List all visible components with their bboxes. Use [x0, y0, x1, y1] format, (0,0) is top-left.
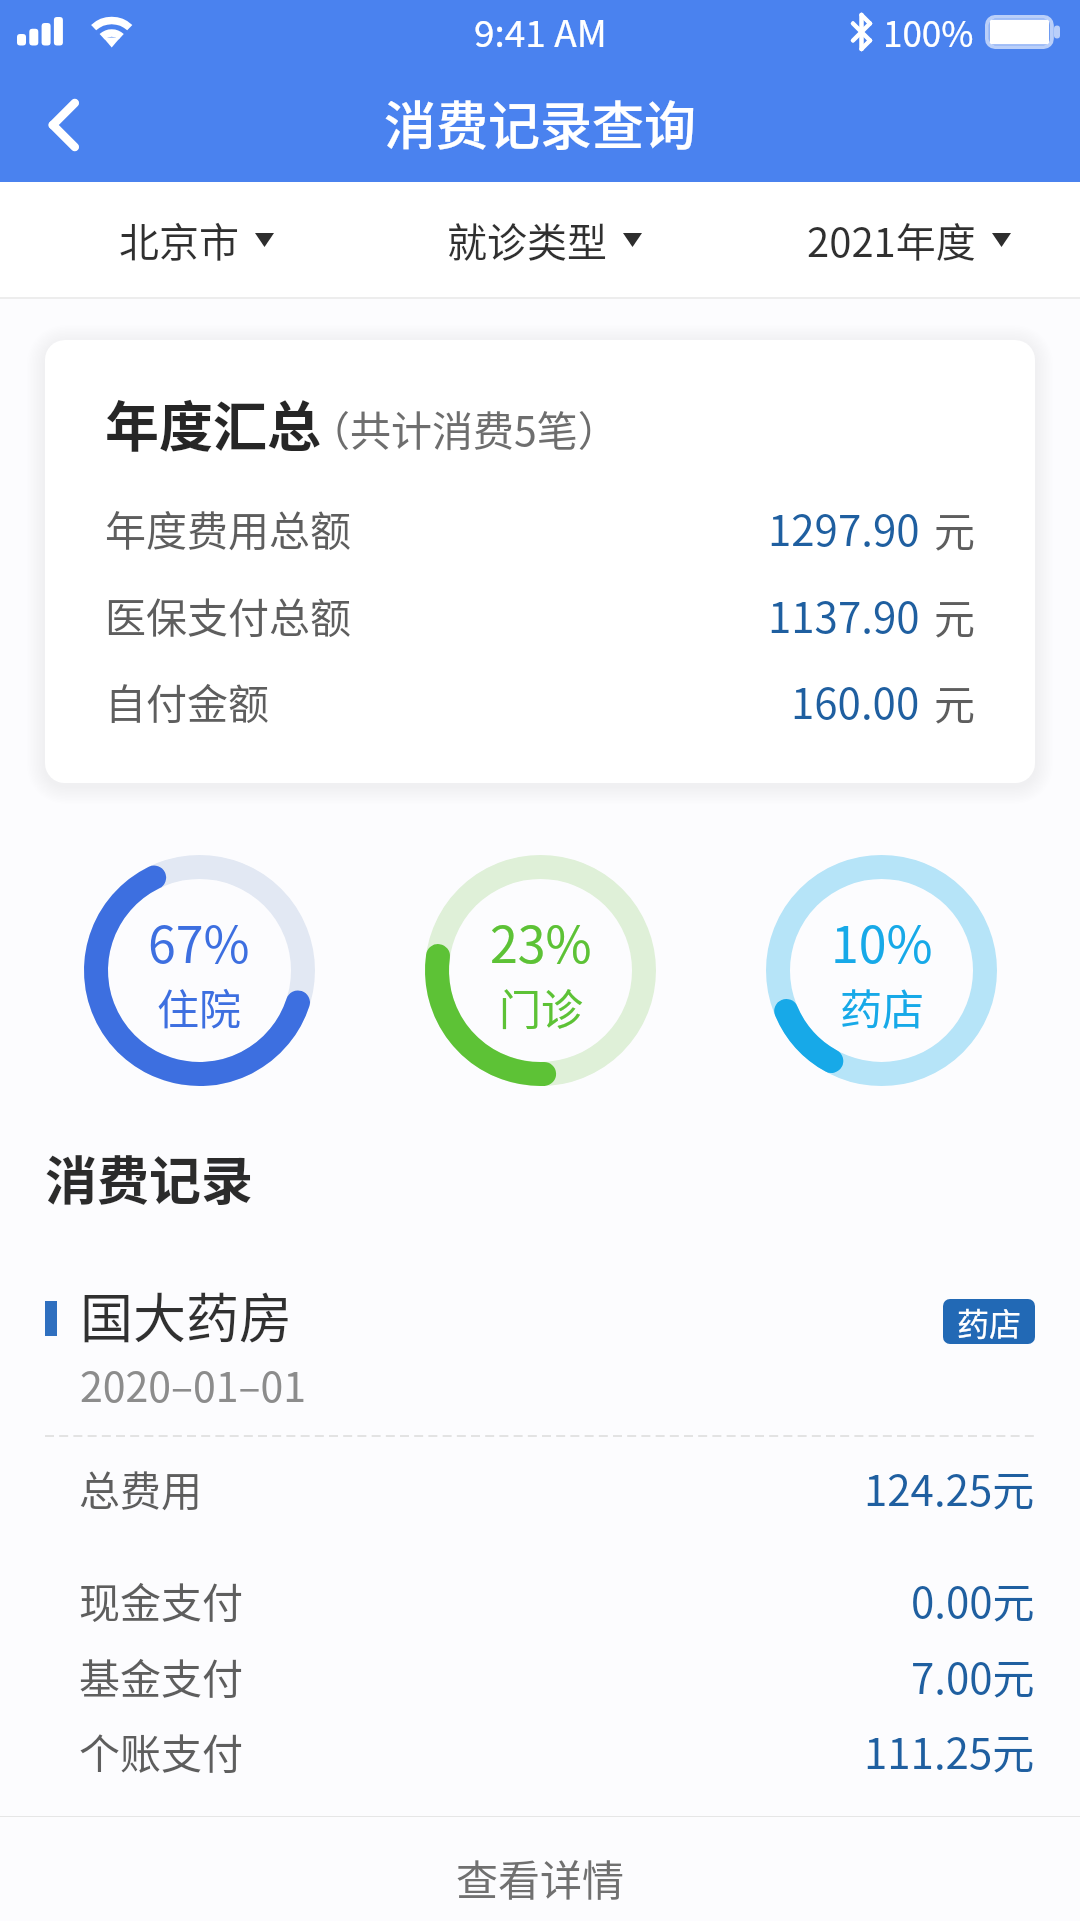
button[interactable]: 就诊类型 [369, 182, 720, 297]
staticText: 查看详情 [456, 1847, 625, 1908]
staticText: 160.00 [791, 670, 920, 731]
staticText: 北京市 [119, 211, 239, 269]
staticText: 自付金额 [105, 671, 269, 730]
staticText: 基金支付 [79, 1646, 243, 1705]
staticText: 消费记录 [45, 1140, 254, 1215]
staticText: 现金支付 [79, 1570, 243, 1629]
staticText: 总费用 [79, 1458, 202, 1517]
staticText: 100% [883, 6, 974, 57]
staticText: 7.00元 [911, 1645, 1035, 1706]
staticText: 年度费用总额 [105, 498, 351, 557]
staticText: 就诊类型 [447, 211, 607, 269]
staticText: 药店 [957, 1299, 1022, 1344]
staticText: 9:41 AM [474, 4, 607, 58]
staticText: 1137.90 [768, 584, 920, 645]
button[interactable]: 北京市 [20, 182, 372, 297]
staticText: 个账支付 [79, 1721, 243, 1780]
staticText: 元 [934, 672, 975, 731]
button[interactable]: Back [0, 67, 110, 177]
staticText: 年度汇总 [105, 384, 321, 462]
staticText: 67% [148, 905, 250, 977]
staticText: 国大药房 [80, 1277, 292, 1354]
staticText: 元 [934, 586, 975, 645]
staticText: 门诊 [499, 976, 584, 1037]
staticText: 消费记录查询 [384, 85, 697, 160]
staticText: 2021年度 [807, 211, 976, 269]
staticText: 111.25元 [864, 1720, 1035, 1781]
staticText: 2020–01–01 [80, 1354, 306, 1413]
staticText: 10% [831, 905, 933, 977]
button[interactable]: 查看详情 [0, 1817, 1080, 1921]
button[interactable]: 药店 [943, 1299, 1035, 1344]
staticText: 住院 [157, 976, 242, 1037]
staticText: 药店 [840, 976, 925, 1037]
staticText: 医保支付总额 [105, 585, 351, 644]
staticText: 元 [934, 499, 975, 558]
staticText: （共计消费5笔） [309, 398, 619, 457]
staticText: 23% [490, 905, 592, 977]
staticText: 1297.90 [768, 497, 920, 558]
staticText: 124.25元 [864, 1457, 1035, 1518]
button[interactable]: 2021年度 [733, 182, 1080, 297]
staticText: 0.00元 [911, 1569, 1035, 1630]
